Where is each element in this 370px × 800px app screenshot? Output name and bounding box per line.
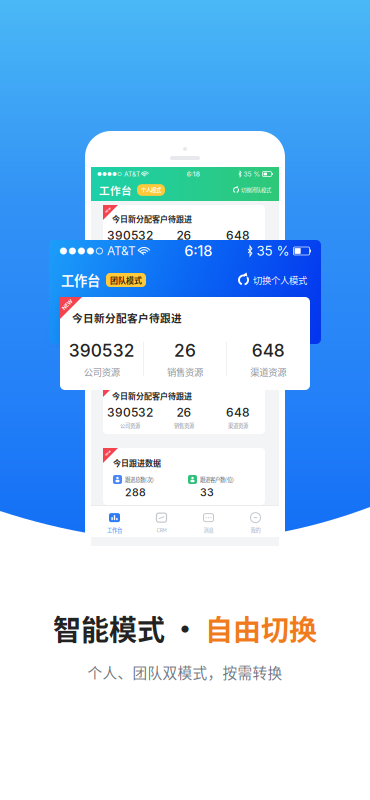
staticText: 团队模式 xyxy=(110,274,142,286)
staticText: 我的 xyxy=(250,526,260,534)
staticText: 切换个人模式 xyxy=(253,273,307,287)
staticText: 33 xyxy=(200,486,214,499)
staticText: 消息 xyxy=(203,526,213,534)
staticText: 销售资源 xyxy=(174,244,194,252)
staticText: 648 xyxy=(226,405,250,419)
staticText: AT&T xyxy=(122,170,142,178)
staticText: 公司资源 xyxy=(120,421,140,429)
staticText: 公司资源 xyxy=(120,244,140,252)
staticText: 渠道资源 xyxy=(228,421,248,429)
staticText: 26 xyxy=(176,405,191,419)
staticText: 今日跟进数据 xyxy=(113,457,161,469)
staticText: NEW xyxy=(105,208,112,212)
staticText: 390532 xyxy=(69,340,135,361)
staticText: AT&T xyxy=(104,244,139,258)
staticText: 智能模式 · xyxy=(53,608,205,648)
staticText: 648 xyxy=(252,340,285,361)
staticText: 跟进客户数(位) xyxy=(200,476,234,483)
staticText: 35 % xyxy=(252,243,293,259)
button[interactable]: 我的 xyxy=(232,512,279,534)
staticText: ●●●●○ xyxy=(97,171,122,177)
staticText: 自由切换 xyxy=(205,608,317,648)
staticText: 工作台 xyxy=(61,270,100,290)
staticText: 个人、团队双模式，按需转换 xyxy=(87,661,282,683)
staticText: 今日新分配客户待跟进 xyxy=(72,310,182,325)
staticText: 工作台 xyxy=(107,526,122,534)
staticText: 跟进总数(次) xyxy=(125,476,154,483)
button[interactable]: 消息 xyxy=(185,512,232,534)
staticText: 渠道资源 xyxy=(250,365,286,378)
staticText: 今日新分配客户待跟进 xyxy=(112,213,192,225)
staticText: 26 xyxy=(174,340,196,361)
staticText: NEW xyxy=(105,451,112,455)
staticText: 销售资源 xyxy=(167,365,203,378)
staticText: ●●●●○ xyxy=(59,245,104,257)
staticText: CRM xyxy=(156,526,166,534)
staticText: 个人模式 xyxy=(141,186,161,194)
staticText: 6:18 xyxy=(187,170,200,178)
staticText: 648 xyxy=(226,228,250,242)
button[interactable]: CRM xyxy=(138,512,185,534)
staticText: 工作台 xyxy=(99,182,132,198)
staticText: NEW xyxy=(61,301,74,308)
staticText: 销售资源 xyxy=(174,421,194,429)
staticText: 今日新分配客户待跟进 xyxy=(112,390,192,402)
button[interactable]: 工作台 xyxy=(91,512,138,534)
staticText: 288 xyxy=(125,486,146,499)
staticText: 35 % xyxy=(241,170,262,178)
staticText: 390532 xyxy=(107,405,153,419)
staticText: 26 xyxy=(176,228,191,242)
staticText: 6:18 xyxy=(184,242,212,260)
staticText: 390532 xyxy=(107,228,153,242)
staticText: 切换团队模式 xyxy=(241,186,271,194)
staticText: 公司资源 xyxy=(84,365,120,378)
